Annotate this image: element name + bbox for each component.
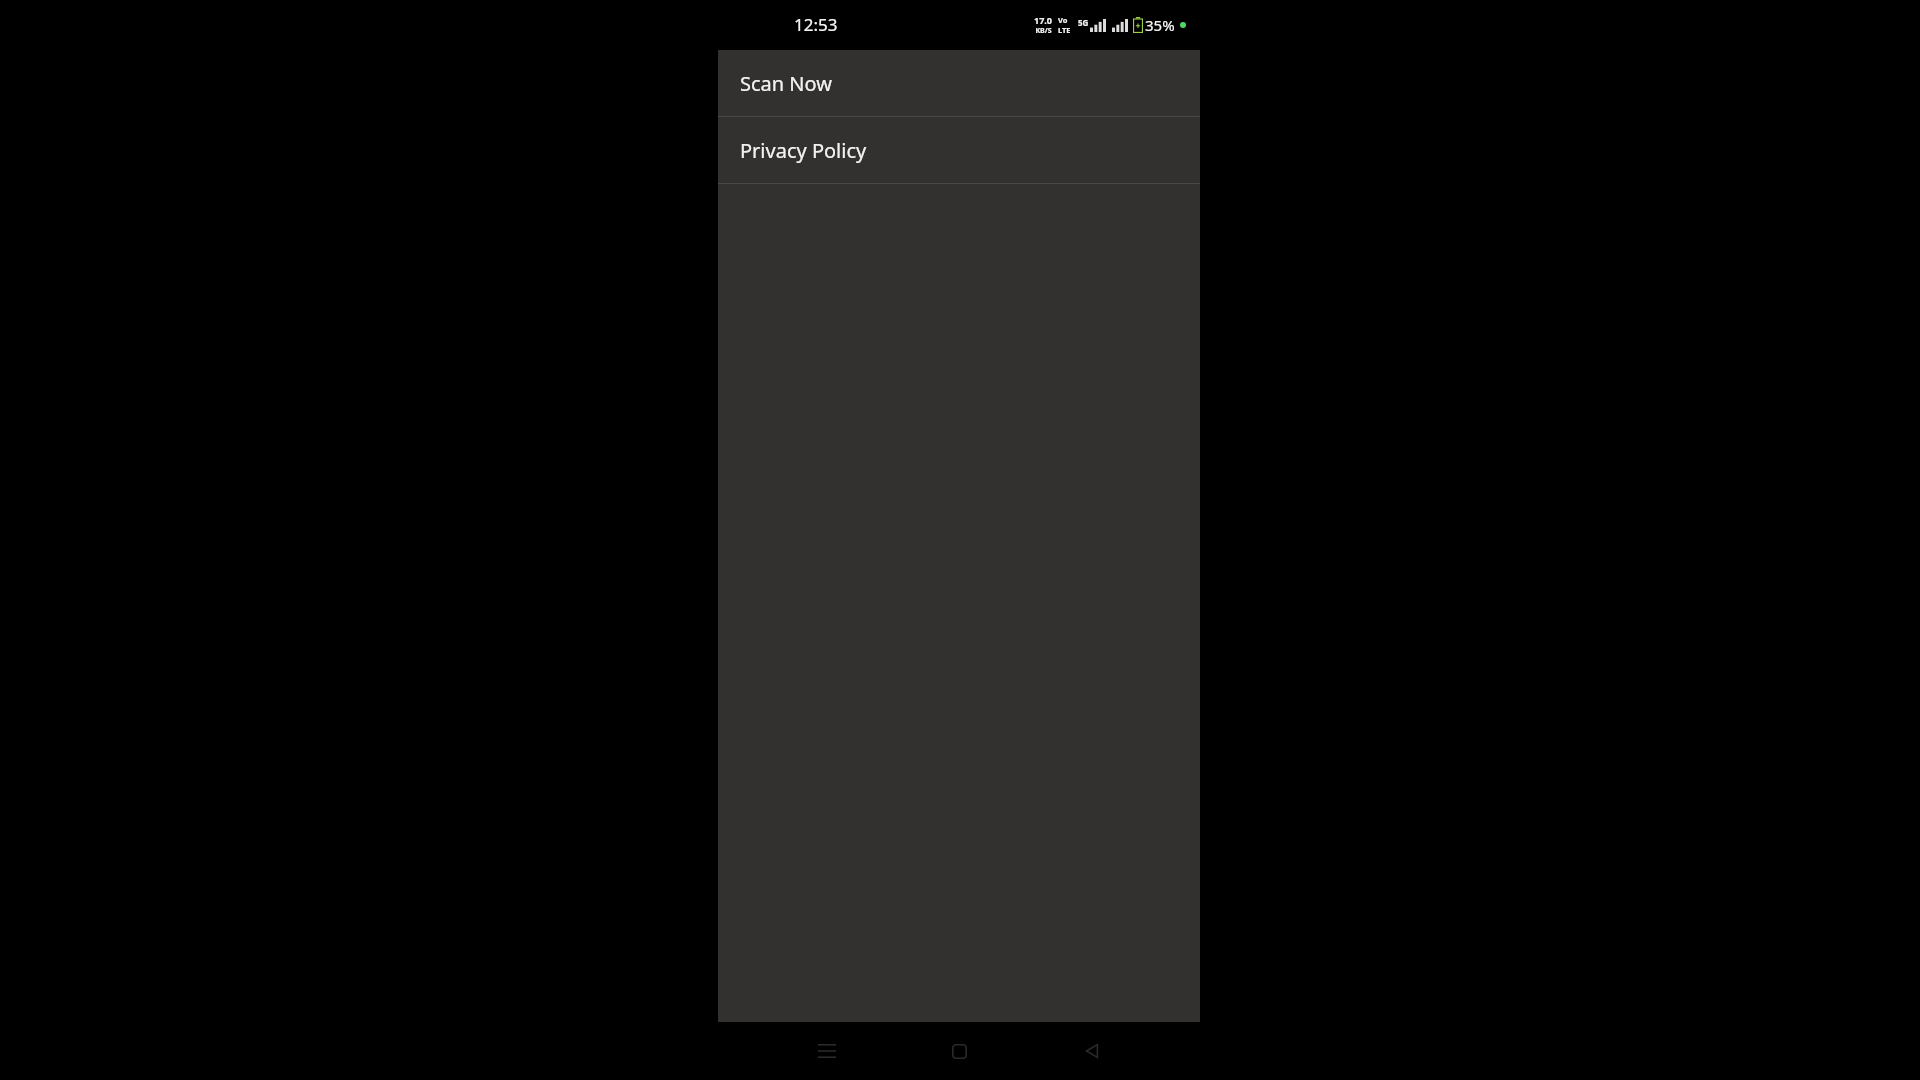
- button[interactable]: Back: [1068, 1027, 1116, 1075]
- staticText: Privacy Policy: [740, 137, 867, 164]
- staticText: 12:53: [794, 13, 838, 36]
- staticText: 17.0: [1034, 14, 1052, 26]
- staticText: LTE: [1058, 25, 1071, 35]
- staticText: Vo: [1058, 15, 1068, 25]
- button[interactable]: Scan Now: [718, 50, 1200, 116]
- staticText: 35%: [1145, 15, 1175, 35]
- staticText: KB/S: [1035, 26, 1052, 36]
- staticText: 5G: [1078, 17, 1089, 28]
- button[interactable]: Recent apps: [803, 1027, 851, 1075]
- button[interactable]: Home: [935, 1027, 983, 1075]
- staticText: Scan Now: [740, 70, 832, 97]
- button[interactable]: Privacy Policy: [718, 117, 1200, 183]
